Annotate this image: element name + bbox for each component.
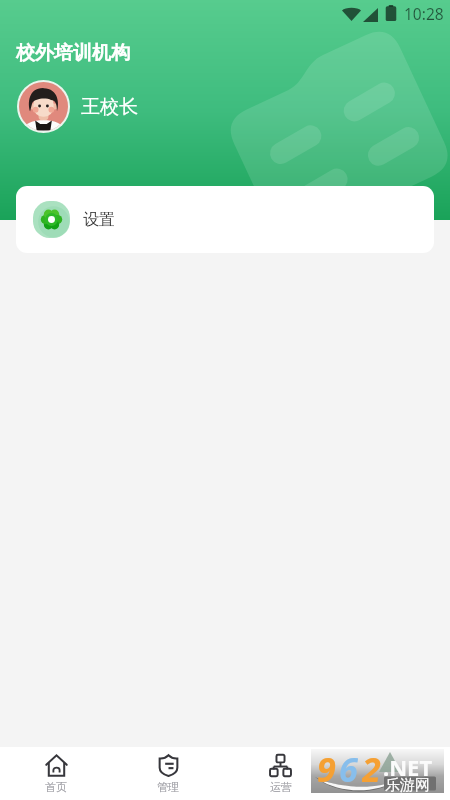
button[interactable]: 我的 [337,747,450,800]
staticText: 10:28 [404,3,444,24]
staticText: 管理 [157,780,179,794]
staticText: 我的 [383,780,405,794]
staticText: 校外培训机构 [16,41,130,65]
staticText: .NET [383,752,433,782]
staticText: 运营 [270,780,292,794]
button[interactable]: 王校长 [17,80,147,133]
staticText: 6 [339,746,358,790]
staticText: 乐游网 [385,776,430,795]
button[interactable]: 设置 [16,186,434,253]
staticText: 2 [362,746,381,790]
button[interactable]: 管理 [112,747,224,800]
staticText: 9 [317,746,336,790]
staticText: 首页 [45,780,67,794]
button[interactable]: 运营 [224,747,337,800]
staticText: 设置 [83,210,115,230]
staticText: 王校长 [81,95,138,119]
button[interactable]: 首页 [0,747,112,800]
